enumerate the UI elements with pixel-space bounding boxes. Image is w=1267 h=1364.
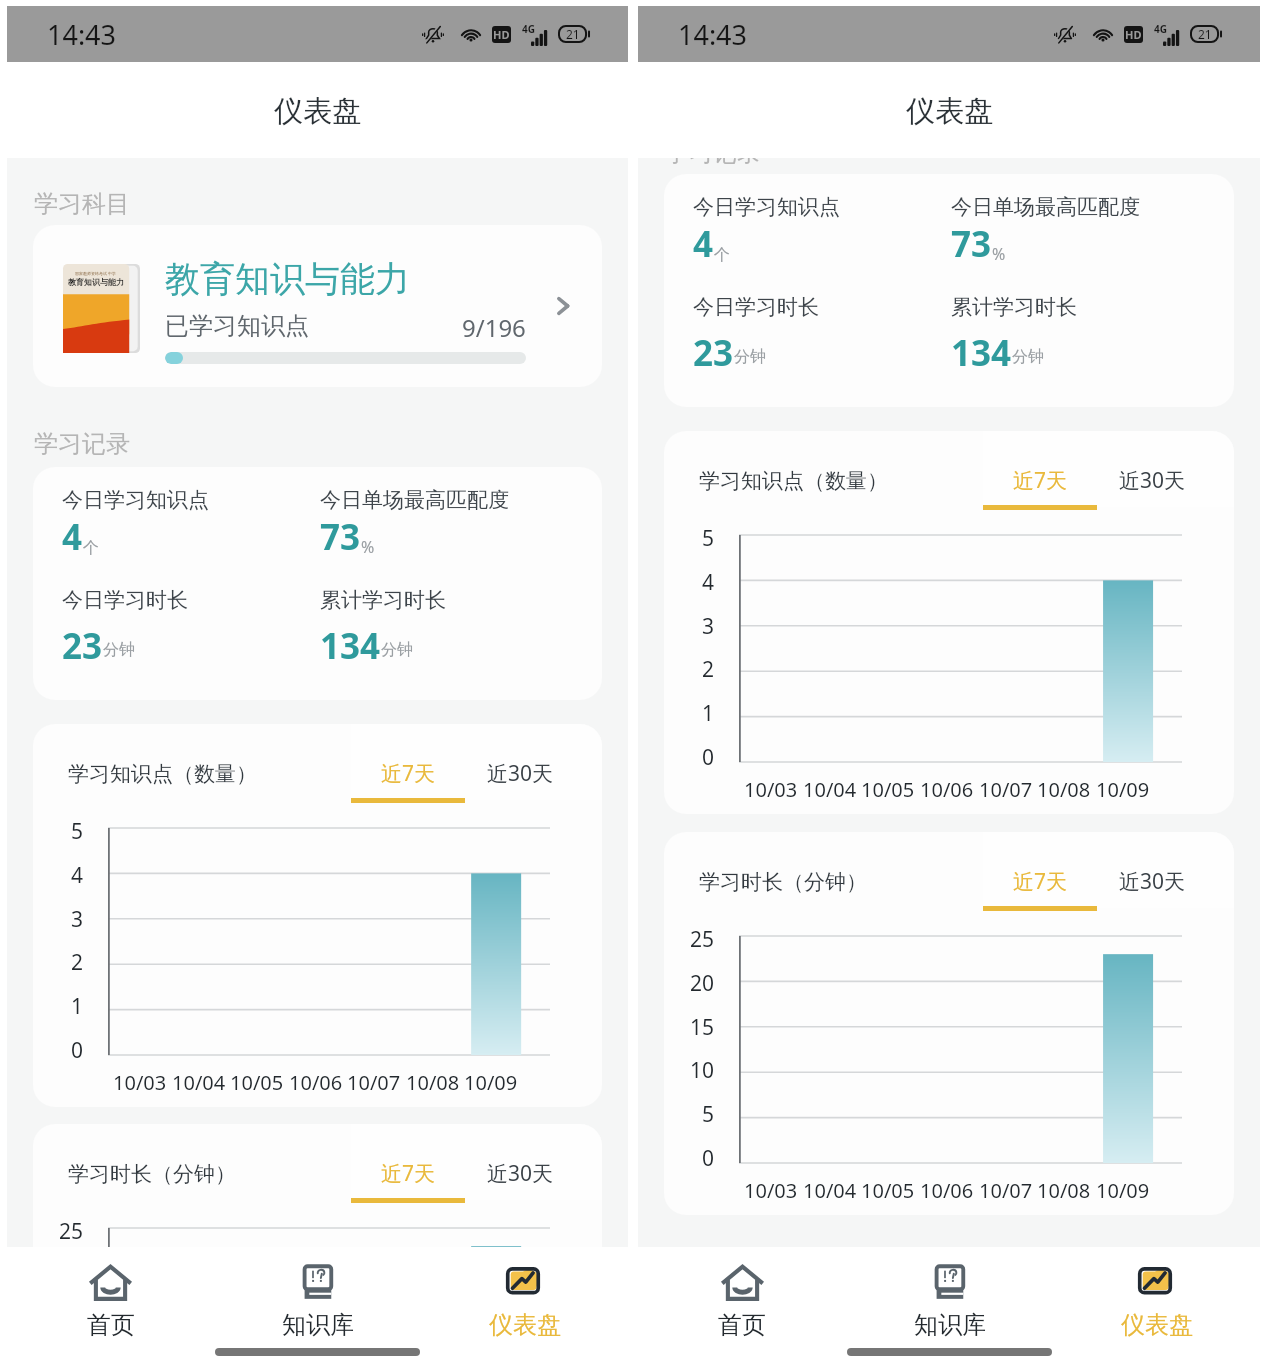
button[interactable]: 近30天 — [1107, 431, 1197, 507]
staticText: 134 — [320, 622, 381, 663]
staticText: 今日学习时长 — [62, 587, 188, 613]
staticText: 4G — [1154, 22, 1167, 36]
staticText: 近30天 — [1119, 466, 1186, 495]
button[interactable]: 首页 — [638, 1261, 846, 1343]
staticText: 仪表盘 — [489, 1310, 561, 1340]
button[interactable]: 首页 — [7, 1261, 214, 1343]
staticText: 0 — [702, 743, 715, 772]
staticText: 2 — [71, 948, 84, 977]
staticText: 近30天 — [487, 759, 554, 788]
staticText: 10/06 — [920, 776, 974, 803]
staticText: 10/06 — [920, 1177, 974, 1204]
staticText: 分钟 — [1012, 347, 1044, 367]
staticText: 10/03 — [744, 776, 798, 803]
staticText: 25 — [59, 1217, 84, 1246]
staticText: 分钟 — [734, 347, 766, 367]
staticText: 5 — [702, 1100, 715, 1129]
staticText: 20 — [690, 969, 715, 998]
button[interactable]: 近7天 — [983, 431, 1097, 507]
staticText: 累计学习时长 — [320, 587, 446, 613]
button[interactable]: 近7天 — [351, 724, 465, 800]
staticText: HD — [493, 27, 510, 42]
staticText: 学习知识点（数量） — [699, 468, 888, 494]
staticText: 10/08 — [1037, 776, 1091, 803]
staticText: 73 — [320, 513, 361, 561]
staticText: 今日学习时长 — [693, 294, 819, 320]
staticText: 知识库 — [282, 1310, 354, 1340]
staticText: 1 — [702, 699, 715, 728]
staticText: 10/07 — [347, 1069, 401, 1096]
button[interactable]: 近30天 — [475, 724, 565, 800]
staticText: 10/09 — [464, 1069, 518, 1096]
staticText: 学习时长（分钟） — [699, 869, 867, 895]
staticText: 近7天 — [1013, 867, 1068, 896]
staticText: 今日学习知识点 — [62, 487, 209, 513]
staticText: 2 — [702, 655, 715, 684]
button[interactable]: 国家教师资格考试 中学 — [33, 225, 602, 387]
staticText: 近7天 — [1013, 466, 1068, 495]
staticText: 仪表盘 — [906, 93, 993, 130]
staticText: % — [361, 536, 375, 558]
staticText: 分钟 — [103, 640, 135, 660]
button[interactable]: 近7天 — [983, 832, 1097, 908]
staticText: 近30天 — [1119, 867, 1186, 896]
staticText: 3 — [71, 905, 84, 934]
staticText: 1 — [71, 992, 84, 1021]
staticText: 个 — [83, 538, 99, 558]
button[interactable]: 仪表盘 — [421, 1261, 628, 1343]
staticText: 3 — [702, 612, 715, 641]
staticText: 4 — [693, 220, 714, 268]
staticText: 近7天 — [381, 759, 436, 788]
staticText: 10/04 — [172, 1069, 226, 1096]
button[interactable]: 近30天 — [1107, 832, 1197, 908]
button[interactable]: 知识库 — [214, 1261, 421, 1343]
button[interactable]: 近30天 — [475, 1124, 565, 1200]
staticText: HD — [1125, 27, 1142, 42]
staticText: 10/09 — [1096, 1177, 1150, 1204]
staticText: 首页 — [87, 1310, 135, 1340]
staticText: 知识库 — [914, 1310, 986, 1340]
staticText: 10/09 — [1096, 776, 1150, 803]
staticText: 国家教师资格考试 中学 — [75, 271, 117, 276]
staticText: 0 — [702, 1144, 715, 1173]
staticText: 4 — [702, 568, 715, 597]
staticText: 已学习知识点 — [165, 311, 309, 341]
button[interactable]: 知识库 — [846, 1261, 1053, 1343]
staticText: 学习记录 — [34, 429, 130, 459]
staticText: 10/03 — [744, 1177, 798, 1204]
staticText: 10/05 — [230, 1069, 284, 1096]
staticText: 21 — [1198, 26, 1212, 42]
staticText: 今日单场最高匹配度 — [320, 487, 509, 513]
staticText: 学习记录 — [665, 158, 761, 168]
staticText: 累计学习时长 — [951, 294, 1077, 320]
staticText: 10/07 — [979, 1177, 1033, 1204]
staticText: 10/07 — [979, 776, 1033, 803]
staticText: 仪表盘 — [1121, 1310, 1193, 1340]
staticText: 10 — [690, 1056, 715, 1085]
staticText: 仪表盘 — [274, 93, 361, 130]
staticText: 10/05 — [861, 776, 915, 803]
staticText: 教育知识与能力 — [68, 277, 124, 287]
staticText: 今日学习知识点 — [693, 194, 840, 220]
staticText: 个 — [714, 245, 730, 265]
staticText: 25 — [690, 925, 715, 954]
staticText: 4 — [71, 861, 84, 890]
staticText: 4G — [522, 22, 535, 36]
staticText: 73 — [951, 220, 992, 268]
staticText: 9/196 — [462, 311, 526, 344]
staticText: 10/08 — [406, 1069, 460, 1096]
button[interactable]: 近7天 — [351, 1124, 465, 1200]
other: Open subject — [550, 293, 576, 319]
staticText: 0 — [71, 1036, 84, 1065]
staticText: 4 — [62, 513, 83, 561]
staticText: 学习知识点（数量） — [68, 761, 257, 787]
staticText: 10/03 — [113, 1069, 167, 1096]
staticText: 首页 — [718, 1310, 766, 1340]
staticText: 学习时长（分钟） — [68, 1161, 236, 1187]
button[interactable]: 仪表盘 — [1053, 1261, 1260, 1343]
staticText: 14:43 — [678, 16, 748, 53]
staticText: 10/06 — [289, 1069, 343, 1096]
staticText: 23 — [693, 329, 734, 370]
staticText: 10/04 — [803, 776, 857, 803]
staticText: % — [992, 243, 1006, 265]
